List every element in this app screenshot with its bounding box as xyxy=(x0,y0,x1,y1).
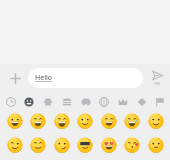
button[interactable]: Emoji 10 xyxy=(76,136,94,154)
button[interactable]: Add attachment xyxy=(5,68,25,88)
button[interactable]: Food xyxy=(58,93,75,110)
button[interactable]: Flags xyxy=(151,93,168,110)
button[interactable]: Travel xyxy=(77,93,94,110)
button[interactable]: Emoji 5 xyxy=(123,112,141,130)
button[interactable]: Emoji 0 xyxy=(6,112,24,130)
button[interactable]: Emoji 12 xyxy=(123,136,141,154)
button[interactable]: Emoji 6 xyxy=(147,112,165,130)
button[interactable]: Symbols xyxy=(133,93,150,110)
button[interactable]: Send xyxy=(147,70,167,86)
button[interactable]: Emoji 8 xyxy=(29,136,47,154)
button[interactable]: Emoji 2 xyxy=(53,112,71,130)
staticText: SMS xyxy=(154,82,161,86)
button[interactable]: Emoji 7 xyxy=(6,136,24,154)
button[interactable]: Objects xyxy=(114,93,131,110)
button[interactable]: Emoji 13 xyxy=(147,136,165,154)
button[interactable]: Emoji 3 xyxy=(76,112,94,130)
button[interactable]: Nature xyxy=(39,93,56,110)
button[interactable]: Emoji 4 xyxy=(100,112,118,130)
button[interactable]: Hello xyxy=(28,68,143,88)
button[interactable]: Smileys xyxy=(20,93,37,110)
staticText: Hello xyxy=(35,73,52,83)
button[interactable]: Recent xyxy=(2,93,19,110)
button[interactable]: Emoji 1 xyxy=(29,112,47,130)
button[interactable]: Emoji 9 xyxy=(53,136,71,154)
button[interactable]: Activities xyxy=(95,93,112,110)
button[interactable]: Emoji 11 xyxy=(100,136,118,154)
